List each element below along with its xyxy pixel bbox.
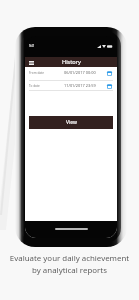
staticText: To date (29, 84, 40, 88)
staticText: 06/01/2017 00:00 (64, 70, 96, 75)
button[interactable]: View (29, 116, 113, 129)
staticText: History (62, 58, 81, 66)
button[interactable]: From date (25, 67, 117, 80)
staticText: View (66, 119, 77, 126)
button[interactable]: Pick date (106, 70, 112, 76)
staticText: Evaluate your daily achievement by analy… (0, 253, 139, 275)
staticText: From date (29, 71, 44, 75)
staticText: 11/01/2017 23:59 (64, 83, 96, 88)
staticText: 9:41 (29, 44, 35, 48)
button[interactable]: Pick date (106, 83, 112, 89)
button[interactable]: To date (25, 81, 117, 90)
button[interactable]: Open navigation menu (27, 58, 35, 67)
